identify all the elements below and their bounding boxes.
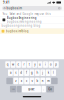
staticText: s [15, 71, 16, 74]
button[interactable]: l [51, 69, 56, 76]
staticText: h [36, 71, 38, 74]
staticText: g [31, 71, 33, 74]
button[interactable]: s [13, 69, 18, 76]
button[interactable]: h [35, 69, 40, 76]
staticText: x [21, 79, 22, 83]
staticText: n [42, 79, 44, 83]
staticText: bugbox.im [6, 6, 22, 10]
button[interactable]: i [43, 61, 48, 68]
staticText: Bugbox Engineering [7, 16, 37, 20]
staticText: 9:41 [3, 1, 10, 4]
button[interactable]: q [5, 61, 10, 68]
button[interactable] [51, 78, 58, 84]
button[interactable]: p [54, 61, 59, 68]
staticText: bugbox.im/blog [6, 29, 29, 33]
staticText: l [53, 71, 54, 74]
button[interactable]: w [11, 61, 15, 68]
button[interactable]: bugbox.im [0, 5, 64, 11]
button[interactable]: bugbox engineering blog [0, 23, 64, 28]
staticText: You, Safari and Google may use this [2, 12, 50, 16]
button[interactable]: Bugbox Engineering [0, 17, 64, 23]
staticText: q [7, 63, 9, 66]
button[interactable]: j [40, 69, 45, 76]
staticText: e [17, 63, 19, 66]
staticText: b [36, 79, 38, 83]
staticText: f [26, 71, 27, 74]
button[interactable]: r [21, 61, 26, 68]
staticText: 123 [12, 88, 15, 90]
staticText: w [12, 63, 14, 66]
button[interactable]: n [40, 78, 45, 84]
staticText: k [48, 71, 49, 74]
staticText: bugbox engineering blog [2, 24, 41, 27]
button[interactable]: v [30, 78, 34, 84]
button[interactable]: m [46, 78, 51, 84]
button[interactable]: o [48, 61, 53, 68]
button[interactable]: 123 [10, 86, 16, 92]
staticText: o [50, 63, 52, 66]
button[interactable] [6, 78, 13, 84]
button[interactable]: z [13, 78, 18, 84]
button[interactable]: space [22, 86, 41, 92]
button[interactable]: y [32, 61, 37, 68]
button[interactable]: e [16, 61, 21, 68]
button[interactable]: g [30, 69, 34, 76]
staticText: j [42, 71, 43, 74]
button[interactable]: b [35, 78, 40, 84]
button[interactable]: d [19, 69, 24, 76]
button[interactable]: . [41, 86, 46, 92]
button[interactable]: Go [46, 86, 54, 92]
button[interactable]: x [19, 78, 24, 84]
staticText: r [23, 63, 24, 66]
staticText: d [20, 71, 22, 74]
button[interactable]: f [24, 69, 29, 76]
staticText: p [55, 63, 57, 66]
button[interactable]: bugbox.im/blog [0, 28, 64, 34]
staticText: space [28, 87, 35, 91]
button[interactable]: c [24, 78, 29, 84]
button[interactable]: k [46, 69, 51, 76]
staticText: y [34, 63, 35, 66]
staticText: bugbox.im/engineering [7, 20, 42, 23]
button[interactable]: t [27, 61, 32, 68]
staticText: . [43, 87, 44, 91]
staticText: z [15, 79, 16, 83]
staticText: m [47, 79, 49, 83]
staticText: t [29, 63, 30, 66]
button[interactable]: u [38, 61, 42, 68]
staticText: a [10, 71, 11, 74]
button[interactable]: a [8, 69, 13, 76]
staticText: i [45, 63, 46, 66]
staticText: Go [48, 87, 52, 91]
staticText: c [26, 79, 27, 83]
staticText: u [39, 63, 41, 66]
